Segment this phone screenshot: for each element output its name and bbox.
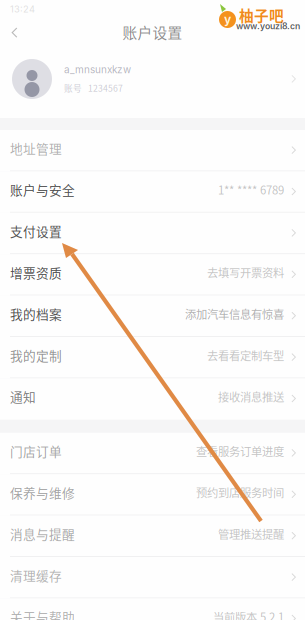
staticText: 消息与提醒 [10,525,75,543]
staticText: 支付设置 [10,222,62,240]
button[interactable]: 支付设置 [0,213,305,254]
staticText: 去填写开票资料 [207,264,284,281]
staticText: 关于与帮助 [10,607,75,620]
staticText: 增票资质 [10,263,62,281]
staticText: 接收消息推送 [218,388,284,405]
staticText: 门店订单 [10,442,62,460]
staticText: 管理推送提醒 [218,526,284,542]
button[interactable]: 增票资质 [0,254,305,296]
staticText: 账户设置 [122,21,182,43]
staticText: 清理缓存 [10,566,62,584]
staticText: 我的定制 [10,346,62,364]
button[interactable]: 地址管理 [0,130,305,171]
button[interactable]: 我的定制 [0,337,305,378]
staticText: 地址管理 [10,139,62,157]
button[interactable]: Back [0,19,30,47]
staticText: y [224,12,231,27]
button[interactable]: 门店订单 [0,433,305,474]
button[interactable]: 我的档案 [0,296,305,337]
staticText: 当前版本 5.2.1 [213,608,284,620]
button[interactable]: 保养与维修 [0,474,305,516]
button[interactable]: 消息与提醒 [0,516,305,557]
button[interactable]: 账户与安全 [0,171,305,213]
staticText: 我的档案 [10,305,62,323]
staticText: 柚子吧 [239,4,284,26]
button[interactable]: a_mnsunxkzw [0,48,305,118]
staticText: 去看看定制车型 [207,347,284,363]
staticText: 账户与安全 [10,180,75,199]
staticText: a_mnsunxkzw [64,64,131,76]
staticText: 添加汽车信息有惊喜 [185,306,284,322]
staticText: 保养与维修 [10,483,75,501]
staticText: 13:24 [10,3,35,15]
staticText: 1** **** 6789 [218,181,284,198]
staticText: 预约到店服务时间 [196,484,284,501]
button[interactable]: 关于与帮助 [0,598,305,620]
staticText: 通知 [10,387,36,406]
staticText: www.youzi8.cn [236,21,300,31]
staticText: 账号 1234567 [64,82,123,94]
button[interactable]: 通知 [0,378,305,420]
staticText: 查看服务订单进度 [196,443,284,459]
button[interactable]: 清理缓存 [0,557,305,598]
